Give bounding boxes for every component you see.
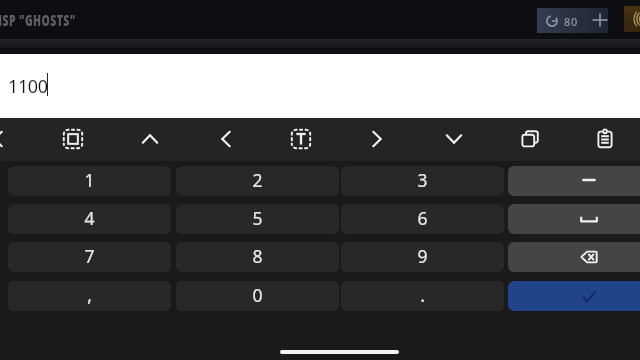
- staticText: 5: [252, 206, 263, 230]
- staticText: 1: [84, 168, 95, 192]
- button[interactable]: Move right: [356, 118, 399, 161]
- staticText: 9: [417, 244, 428, 268]
- button[interactable]: Previous: [0, 118, 20, 161]
- button[interactable]: Space: [508, 204, 640, 234]
- staticText: .: [420, 283, 425, 307]
- button[interactable]: 1: [8, 166, 171, 196]
- button[interactable]: 2: [176, 166, 339, 196]
- button[interactable]: Select text: [280, 118, 323, 161]
- button[interactable]: ,: [8, 281, 171, 311]
- staticText: ,: [87, 283, 92, 307]
- button[interactable]: Enter: [508, 281, 640, 311]
- button[interactable]: Backspace: [508, 242, 640, 272]
- button[interactable]: Select all: [52, 118, 95, 161]
- button[interactable]: Copy: [509, 118, 552, 161]
- button[interactable]: [624, 6, 640, 32]
- staticText: 3: [417, 168, 428, 192]
- button[interactable]: Move left: [205, 118, 248, 161]
- staticText: 0: [252, 283, 263, 307]
- button[interactable]: Paste: [584, 118, 627, 161]
- button[interactable]: Move down: [433, 118, 476, 161]
- staticText: 2: [252, 168, 263, 192]
- staticText: 4: [84, 206, 95, 230]
- button[interactable]: 1100: [0, 54, 640, 118]
- button[interactable]: 3: [341, 166, 504, 196]
- button[interactable]: 5: [176, 204, 339, 234]
- button[interactable]: 4: [8, 204, 171, 234]
- button[interactable]: 80: [537, 8, 608, 33]
- staticText: 6: [417, 206, 428, 230]
- button[interactable]: Minus: [508, 166, 640, 196]
- button[interactable]: 0: [176, 281, 339, 311]
- button[interactable]: .: [341, 281, 504, 311]
- staticText: 7: [84, 244, 95, 268]
- staticText: 80: [564, 14, 578, 29]
- staticText: 8: [252, 244, 263, 268]
- button[interactable]: 8: [176, 242, 339, 272]
- button[interactable]: 9: [341, 242, 504, 272]
- staticText: MSP "GHOSTS": [0, 10, 76, 30]
- button[interactable]: 7: [8, 242, 171, 272]
- button[interactable]: 6: [341, 204, 504, 234]
- button[interactable]: Move up: [129, 118, 172, 161]
- staticText: 1100: [8, 74, 48, 99]
